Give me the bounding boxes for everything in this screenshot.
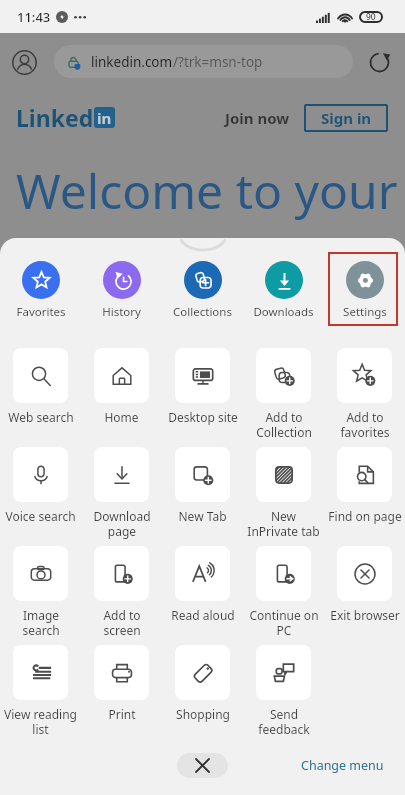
button[interactable]: Find on page [324,447,405,524]
button[interactable]: Refresh [365,48,393,76]
button[interactable]: Voice search [0,447,81,524]
staticText: Shopping [176,706,230,722]
button[interactable]: Read aloud [162,546,243,623]
button[interactable]: Favorites [0,252,81,320]
button[interactable]: Image search [0,546,81,638]
staticText: New InPrivate tab [247,508,320,539]
button[interactable]: Shopping [162,645,243,722]
staticText: New Tab [178,508,227,524]
staticText: Read aloud [171,607,235,623]
staticText: Add to screen [103,607,141,638]
button[interactable]: Send feedback [243,645,324,737]
button[interactable]: Change menu [301,757,384,774]
staticText: History [102,304,141,320]
staticText: Send feedback [258,706,310,737]
button[interactable]: Add to screen [81,546,162,638]
staticText: Join now [225,108,290,128]
button[interactable]: Desktop site [162,348,243,425]
button[interactable]: View reading list [0,645,81,737]
staticText: Welcome to your [16,158,398,223]
staticText: Settings [343,304,387,320]
staticText: Collections [173,304,232,320]
staticText: View reading list [4,706,77,737]
staticText: Desktop site [168,409,238,425]
button[interactable]: Settings [324,252,405,320]
staticText: Add to favorites [340,409,390,440]
button[interactable]: Download page [81,447,162,539]
staticText: Favorites [16,304,66,320]
button[interactable]: Sign in [304,104,388,132]
staticText: Change menu [301,757,384,774]
staticText: 11:43 [17,8,51,26]
staticText: Sign in [321,108,372,128]
button[interactable]: New InPrivate tab [243,447,324,539]
staticText: Image search [22,607,60,638]
button[interactable]: Add to Collection [243,348,324,440]
staticText: Print [108,706,136,722]
staticText: Continue on PC [249,607,319,638]
button[interactable]: Downloads [243,252,324,320]
staticText: 90 [366,11,376,23]
staticText: in [97,108,112,128]
button[interactable]: Add to favorites [324,348,405,440]
staticText: Download page [93,508,151,539]
staticText: Web search [8,409,74,425]
staticText: /?trk=msn-top [173,53,263,71]
staticText: Exit browser [330,607,400,623]
button[interactable]: Exit browser [324,546,405,623]
staticText: linkedin.com [91,53,173,71]
button[interactable]: linkedin.com [54,45,353,78]
staticText: Add to Collection [256,409,312,440]
button[interactable]: Close [177,753,228,778]
button[interactable]: Collections [162,252,243,320]
button[interactable]: Print [81,645,162,722]
staticText: Downloads [253,304,314,320]
button[interactable]: New Tab [162,447,243,524]
button[interactable]: History [81,252,162,320]
staticText: Home [104,409,139,425]
button[interactable]: Web search [0,348,81,425]
staticText: Linked [16,102,94,133]
button[interactable]: Profile [8,46,40,78]
button[interactable]: Continue on PC [243,546,324,638]
button[interactable]: Home [81,348,162,425]
staticText: Voice search [5,508,76,524]
staticText: Find on page [328,508,402,524]
